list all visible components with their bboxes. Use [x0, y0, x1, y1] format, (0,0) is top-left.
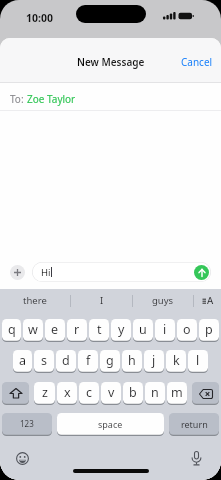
button[interactable]: j — [144, 350, 164, 373]
button[interactable]: guys — [133, 289, 193, 312]
button[interactable] — [188, 450, 205, 467]
staticText: t — [97, 321, 102, 338]
staticText: To: — [10, 92, 27, 106]
button[interactable] — [2, 382, 29, 405]
staticText: q — [8, 321, 16, 338]
button[interactable]: v — [101, 382, 121, 405]
button[interactable]: return — [169, 413, 219, 436]
button[interactable]: c — [79, 382, 99, 405]
staticText: space — [98, 418, 123, 430]
button[interactable]: Cancel — [181, 55, 221, 69]
staticText: i — [163, 321, 167, 338]
button[interactable]: r — [67, 319, 87, 342]
button[interactable]: b — [123, 382, 143, 405]
button[interactable] — [10, 265, 25, 280]
staticText: k — [173, 352, 180, 369]
staticText: a — [19, 352, 27, 369]
button[interactable]: t — [89, 319, 109, 342]
staticText: r — [74, 321, 80, 338]
staticText: n — [151, 384, 159, 401]
button[interactable]: 123 — [2, 413, 52, 436]
button[interactable]: Hi — [32, 262, 211, 282]
button[interactable]: e — [45, 319, 65, 342]
staticText: c — [86, 384, 93, 401]
button[interactable]: z — [34, 382, 55, 405]
button[interactable]: h — [122, 350, 142, 373]
staticText: u — [139, 321, 147, 338]
button[interactable]: A — [194, 289, 221, 312]
button[interactable]: d — [56, 350, 76, 373]
button[interactable]: g — [100, 350, 120, 373]
staticText: b — [129, 384, 137, 401]
button[interactable]: To: — [0, 83, 221, 110]
staticText: m — [171, 384, 183, 401]
staticText: d — [62, 352, 70, 369]
button[interactable]: o — [177, 319, 197, 342]
button[interactable]: n — [145, 382, 165, 405]
staticText: Zoe Taylor — [27, 92, 76, 106]
button[interactable]: l — [188, 350, 208, 373]
staticText: g — [106, 352, 114, 369]
button[interactable] — [194, 265, 209, 280]
staticText: return — [181, 418, 208, 430]
staticText: p — [205, 321, 213, 338]
button[interactable] — [192, 382, 219, 405]
staticText: e — [51, 321, 59, 338]
staticText: guys — [152, 294, 174, 307]
button[interactable]: w — [23, 319, 43, 342]
staticText: x — [64, 384, 71, 401]
staticText: l — [196, 352, 200, 369]
staticText: z — [42, 384, 48, 401]
staticText: h — [128, 352, 136, 369]
staticText: Cancel — [181, 55, 213, 69]
staticText: o — [183, 321, 191, 338]
staticText: A — [207, 294, 214, 307]
button[interactable]: y — [111, 319, 131, 342]
staticText: j — [152, 352, 156, 369]
staticText: w — [28, 321, 38, 338]
button[interactable]: i — [155, 319, 175, 342]
staticText: 10:00 — [26, 11, 53, 25]
staticText: I — [100, 294, 104, 307]
staticText: there — [23, 294, 47, 307]
button[interactable]: space — [57, 413, 164, 436]
staticText: 123 — [20, 418, 34, 429]
button[interactable]: s — [34, 350, 54, 373]
button[interactable]: k — [166, 350, 186, 373]
button[interactable]: x — [57, 382, 77, 405]
button[interactable]: u — [133, 319, 153, 342]
staticText: s — [41, 352, 47, 369]
button[interactable] — [14, 450, 31, 467]
button[interactable]: m — [167, 382, 187, 405]
button[interactable]: a — [13, 350, 32, 373]
staticText: f — [86, 352, 91, 369]
button[interactable]: f — [78, 350, 98, 373]
staticText: y — [118, 321, 125, 338]
button[interactable]: I — [71, 289, 132, 312]
button[interactable]: p — [199, 319, 219, 342]
staticText: New Message — [77, 55, 145, 69]
button[interactable]: q — [2, 319, 21, 342]
staticText: Hi — [41, 266, 51, 279]
staticText: v — [108, 384, 115, 401]
button[interactable]: there — [0, 289, 70, 312]
